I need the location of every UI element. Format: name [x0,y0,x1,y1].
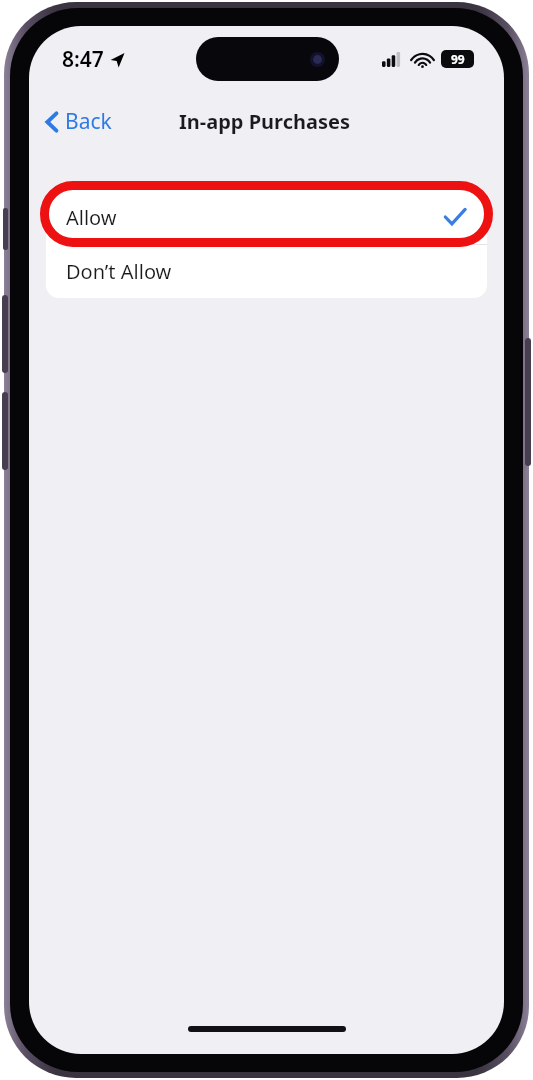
staticText: Allow [66,204,117,231]
staticText: 99 [451,51,465,67]
staticText: Don’t Allow [66,258,172,285]
other: Volume down [2,392,8,470]
button[interactable]: Allow [46,190,487,244]
staticText: 8:47 [62,45,104,74]
other: Volume up [2,295,8,373]
other: Power [525,338,531,466]
staticText: In-app Purchases [179,108,350,135]
button[interactable]: Back [37,101,120,142]
other: Silent switch [3,208,8,250]
button[interactable]: Don’t Allow [46,245,487,298]
staticText: Back [65,107,112,136]
